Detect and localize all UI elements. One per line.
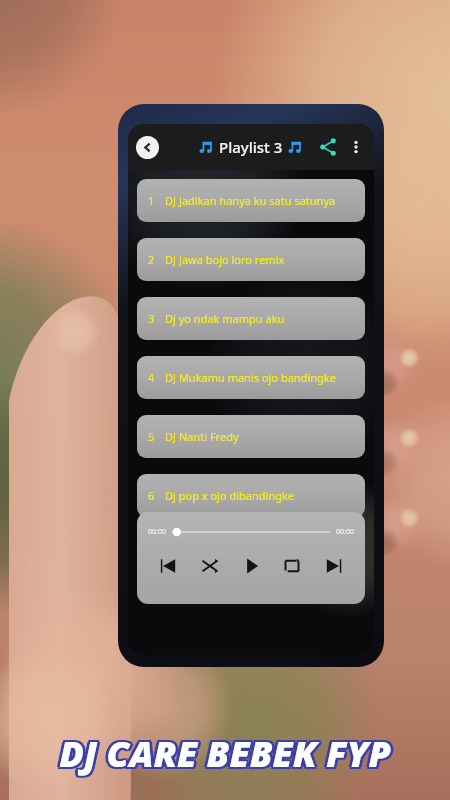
staticText: DJ Mukamu manis ojo bandingke — [165, 370, 336, 385]
staticText: 3 — [148, 311, 155, 326]
button[interactable]: 2 — [137, 238, 365, 281]
button[interactable]: Share — [317, 136, 339, 158]
staticText: 4 — [148, 370, 155, 385]
button[interactable]: Seek bar — [172, 525, 330, 539]
staticText: 5 — [148, 429, 155, 444]
staticText: DJ CARE BEBEK FYP — [59, 729, 391, 778]
staticText: 2 — [148, 252, 155, 267]
button[interactable]: 5 — [137, 415, 365, 458]
button[interactable]: Play — [230, 546, 271, 586]
staticText: DJ Jadikan hanya ku satu satunya — [165, 193, 336, 208]
staticText: DJ CARE BEBEK FYP — [56, 729, 388, 778]
button[interactable]: 4 — [137, 356, 365, 399]
staticText: DJ CARE BEBEK FYP — [59, 727, 391, 776]
button[interactable]: Next — [312, 546, 353, 586]
staticText: DJ CARE BEBEK FYP — [57, 731, 389, 780]
button[interactable]: More options — [346, 137, 366, 157]
staticText: DJ CARE BEBEK FYP — [57, 727, 389, 776]
staticText: Playlist 3 — [219, 137, 283, 157]
button[interactable]: Shuffle — [189, 546, 230, 586]
staticText: DJ CARE BEBEK FYP — [61, 731, 393, 780]
staticText: DJ Jawa bojo loro remix — [165, 252, 285, 267]
button[interactable]: Repeat — [271, 546, 312, 586]
staticText: Dj yo ndak mampu aku — [165, 311, 285, 326]
staticText: 00:00 — [336, 527, 354, 537]
staticText: Dj pop x ojo dibandingke — [165, 488, 295, 503]
staticText: DJ CARE BEBEK FYP — [59, 731, 391, 780]
button[interactable]: Back — [136, 136, 159, 159]
button[interactable]: 6 — [137, 474, 365, 517]
staticText: DJ Nanti Fredy — [165, 429, 239, 444]
staticText: 1 — [148, 193, 155, 208]
staticText: DJ CARE BEBEK FYP — [61, 727, 393, 776]
button[interactable]: Previous — [149, 546, 189, 586]
staticText: DJ CARE BEBEK FYP — [62, 729, 394, 778]
button[interactable]: 7 — [137, 533, 365, 576]
button[interactable]: 3 — [137, 297, 365, 340]
staticText: DJ Ojo di bandingke full bass — [165, 547, 313, 562]
staticText: 00:00 — [148, 527, 166, 537]
button[interactable]: 1 — [137, 179, 365, 222]
staticText: 6 — [148, 488, 155, 503]
